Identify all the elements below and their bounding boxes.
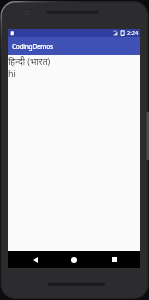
staticText: CodingDemos: [12, 42, 53, 51]
button[interactable]: Back: [22, 251, 48, 268]
button[interactable]: Recents: [101, 251, 127, 268]
staticText: 2:24: [127, 29, 139, 37]
staticText: हिन्दी (भारत): [8, 55, 51, 67]
staticText: hi: [8, 67, 16, 79]
button[interactable]: Home: [61, 251, 87, 268]
